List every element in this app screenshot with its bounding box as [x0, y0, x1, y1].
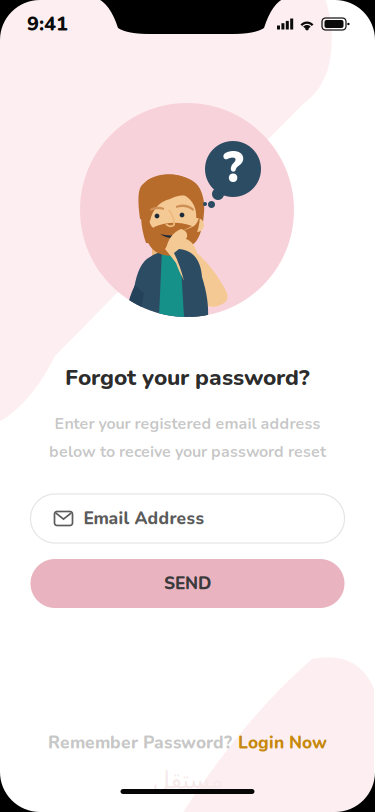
staticText: ?: [223, 139, 243, 197]
staticText: Forgot your password?: [65, 362, 310, 393]
staticText: Email Address: [83, 507, 204, 530]
staticText: 9:41: [27, 10, 68, 38]
button[interactable]: Login Now: [232, 731, 327, 755]
button[interactable]: Email Address: [30, 494, 344, 543]
staticText: SEND: [164, 572, 211, 595]
staticText: Enter your registered email address: [54, 413, 320, 435]
button[interactable]: SEND: [30, 559, 344, 608]
staticText: مستقل: [152, 766, 223, 794]
staticText: below to receive your password reset: [49, 441, 326, 462]
staticText: Login Now: [238, 731, 327, 755]
staticText: Remember Password?: [48, 731, 232, 755]
